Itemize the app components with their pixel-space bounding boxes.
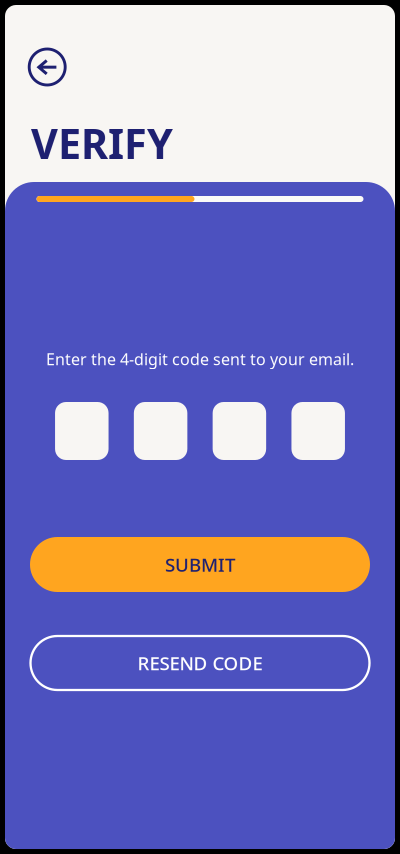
button[interactable]: RESEND CODE xyxy=(30,636,369,690)
button[interactable]: SUBMIT xyxy=(30,537,370,592)
staticText: RESEND CODE xyxy=(137,651,262,675)
staticText: Enter the 4-digit code sent to your emai… xyxy=(46,348,354,370)
button[interactable]: Back xyxy=(19,39,75,95)
staticText: VERIFY xyxy=(31,116,173,170)
staticText: SUBMIT xyxy=(165,552,235,577)
